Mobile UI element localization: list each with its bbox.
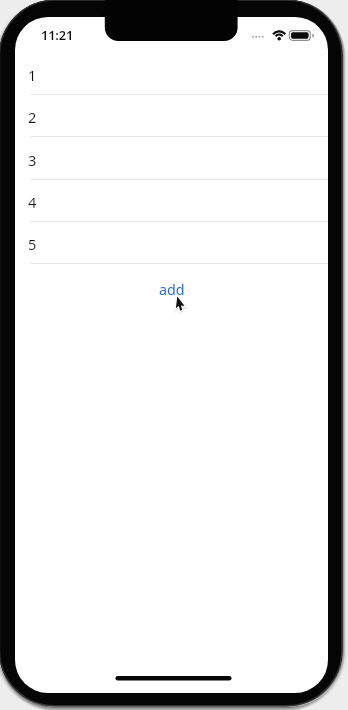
- staticText: 3: [28, 150, 37, 170]
- staticText: 5: [28, 234, 37, 254]
- staticText: add: [159, 280, 185, 299]
- staticText: 4: [28, 192, 37, 212]
- button[interactable]: add: [15, 264, 328, 306]
- staticText: 11:21: [41, 26, 74, 43]
- staticText: 1: [28, 65, 37, 85]
- staticText: 2: [28, 107, 37, 127]
